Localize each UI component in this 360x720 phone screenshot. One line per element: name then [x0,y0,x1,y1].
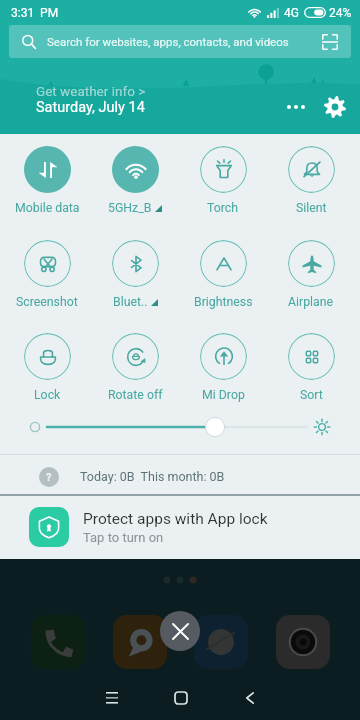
button[interactable]: Camera [276,615,330,669]
button[interactable]: Lock [3,329,91,402]
staticText: Mi Drop [202,388,245,402]
button[interactable]: Settings [318,90,352,124]
button[interactable]: Home [159,676,203,720]
button[interactable]: Sort [267,329,355,402]
button[interactable]: More options [279,90,313,124]
staticText: Today: 0B This month: 0B [80,469,225,484]
staticText: Silent [296,201,327,215]
button[interactable]: Search for websites, apps, contacts, and… [9,25,351,58]
staticText: Screenshot [16,295,78,309]
button[interactable]: Screenshot [3,236,91,309]
staticText: Sort [300,388,323,402]
button[interactable]: Scan [319,31,341,53]
button[interactable]: Browser [194,615,248,669]
staticText: 3:31 PM [11,6,59,20]
staticText: Saturday, July 14 [36,99,145,116]
staticText: Torch [207,201,239,215]
staticText: Bluet.. [113,295,148,309]
staticText: Protect apps with App lock [83,510,268,528]
staticText: Rotate off [108,388,163,402]
staticText: 4G [284,6,299,20]
button[interactable]: ? [0,459,360,494]
staticText: Lock [34,388,61,402]
staticText: Search for websites, apps, contacts, and… [47,35,319,48]
button[interactable]: Airplane [267,236,355,309]
button[interactable]: Protect apps with App lock [0,501,360,553]
button[interactable]: Bluet.. [91,236,179,309]
button[interactable]: Back [228,676,272,720]
button[interactable]: Phone [31,615,85,669]
staticText: Brightness [194,295,253,309]
staticText: Mobile data [15,201,80,215]
staticText: 24% [329,6,352,20]
staticText: 5GHz_B [108,201,152,215]
button[interactable]: 5GHz_B [91,142,179,215]
button[interactable]: Mobile data [3,142,91,215]
staticText: Tap to turn on [83,530,164,545]
staticText: ? [46,471,52,484]
button[interactable]: Brightness [179,236,267,309]
button[interactable]: Messages [113,615,167,669]
button[interactable]: Menu [90,676,134,720]
staticText: Get weather info > [36,83,146,99]
button[interactable]: Torch [179,142,267,215]
button[interactable]: Close [160,611,200,651]
button[interactable]: Silent [267,142,355,215]
button[interactable]: Rotate off [91,329,179,402]
staticText: Airplane [288,295,334,309]
button[interactable]: Mi Drop [179,329,267,402]
